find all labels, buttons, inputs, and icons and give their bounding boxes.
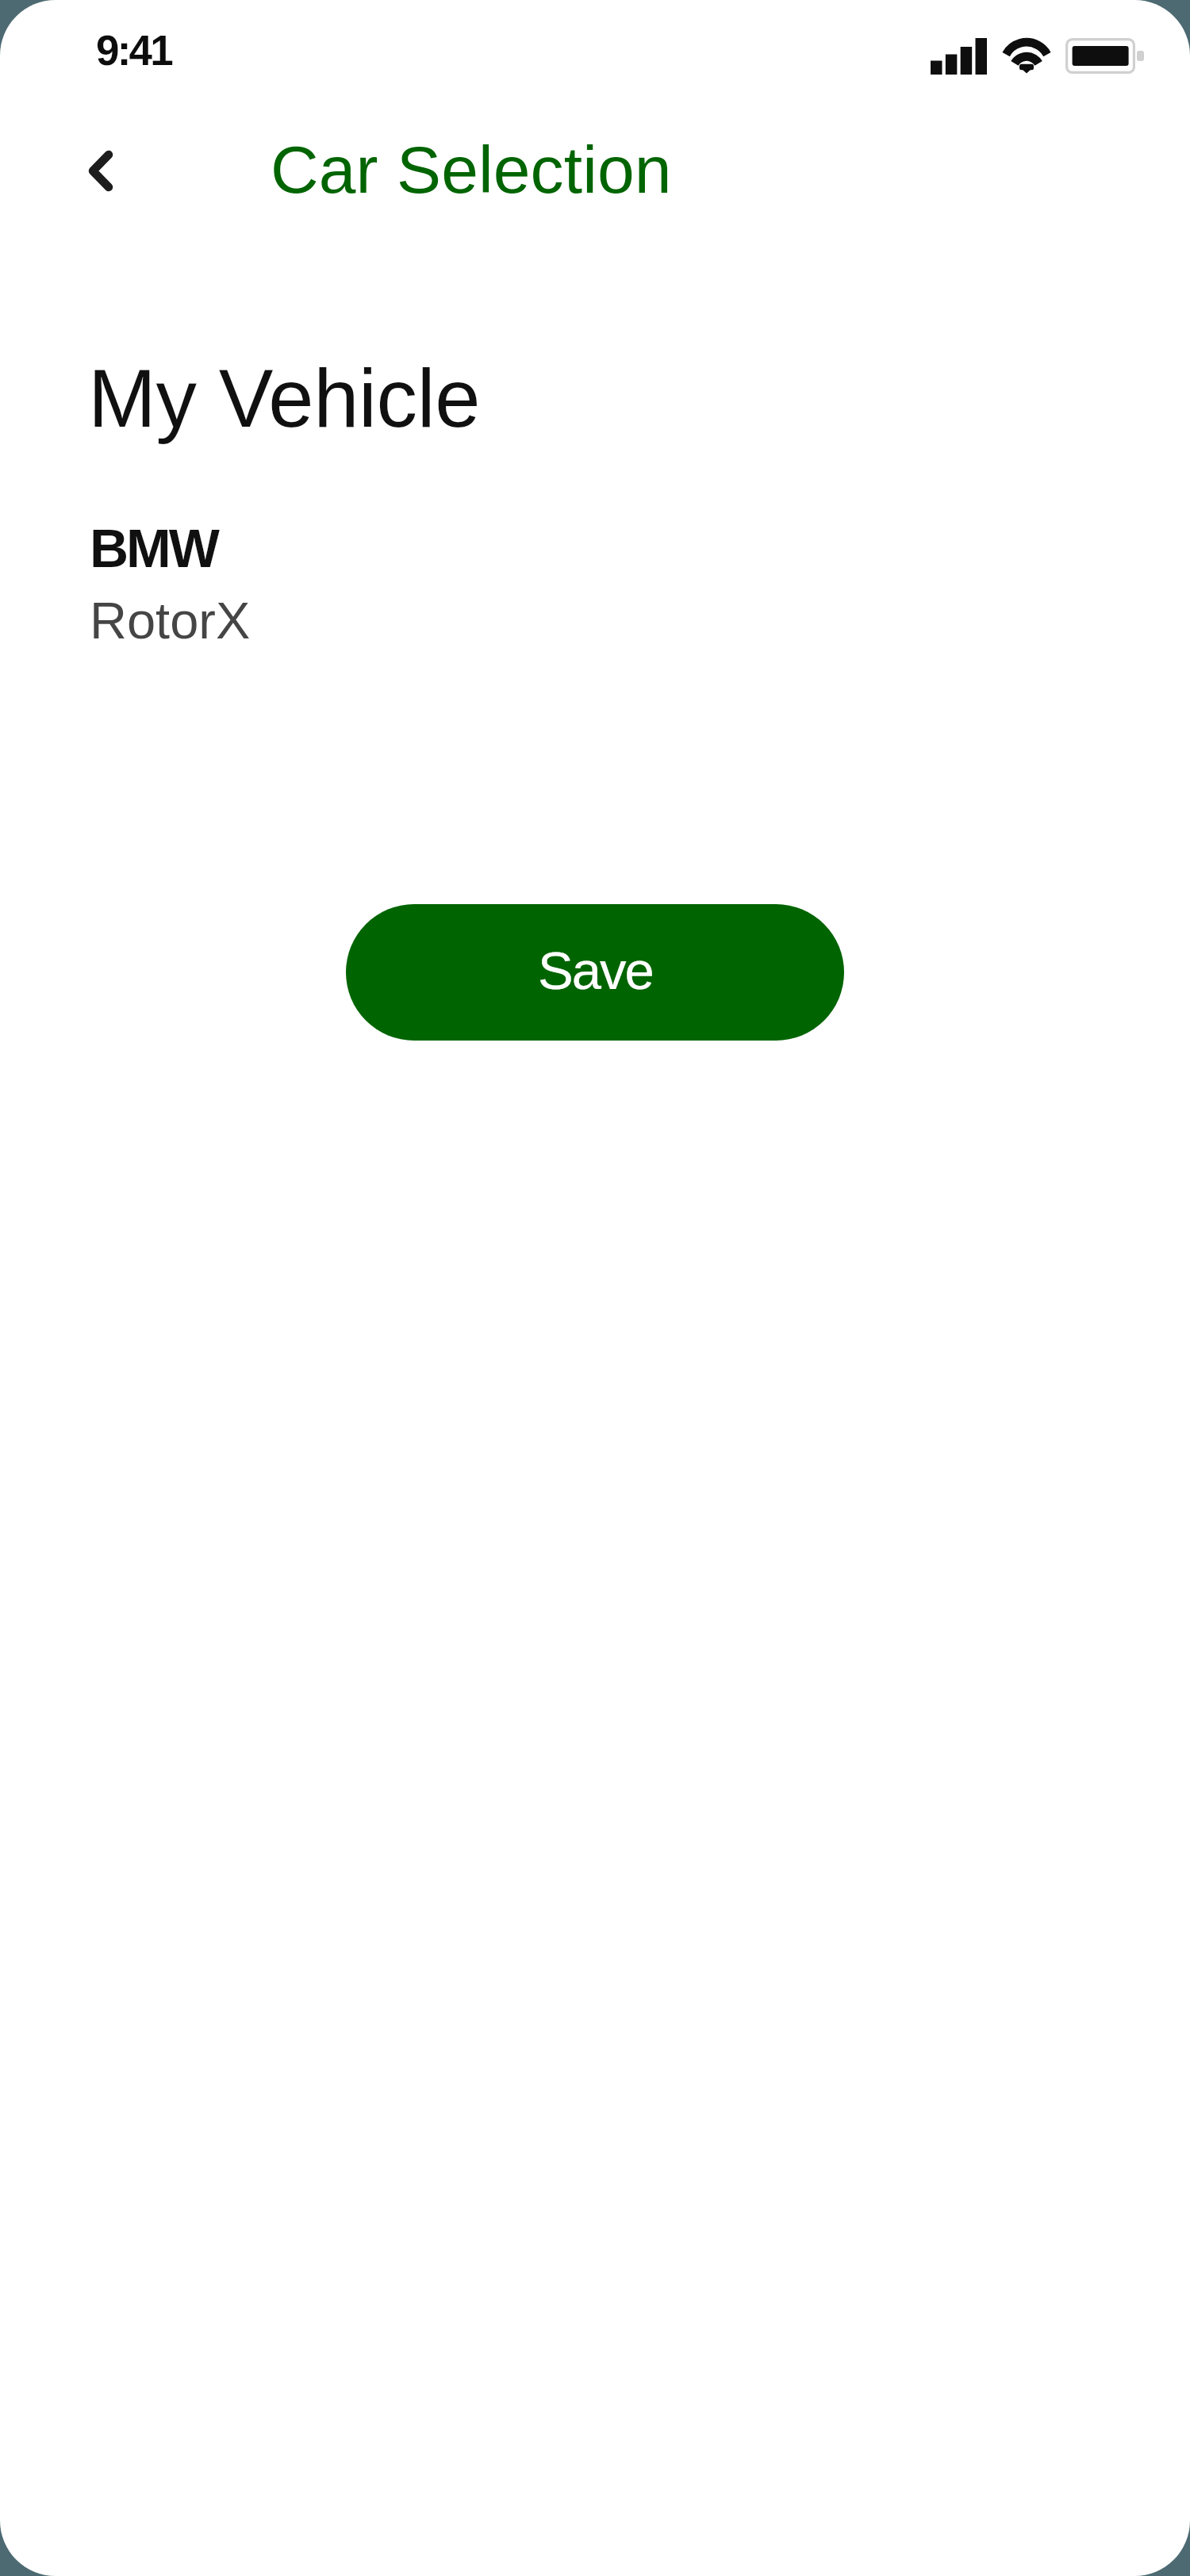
button[interactable]: Save [346,904,844,1041]
staticText: BMW [90,518,217,578]
staticText: RotorX [90,592,251,650]
button[interactable]: Back [60,136,133,209]
staticText: Save [538,941,653,1000]
staticText: Car Selection [271,132,672,207]
staticText: My Vehicle [88,353,481,444]
staticText: 9:41 [96,27,171,74]
